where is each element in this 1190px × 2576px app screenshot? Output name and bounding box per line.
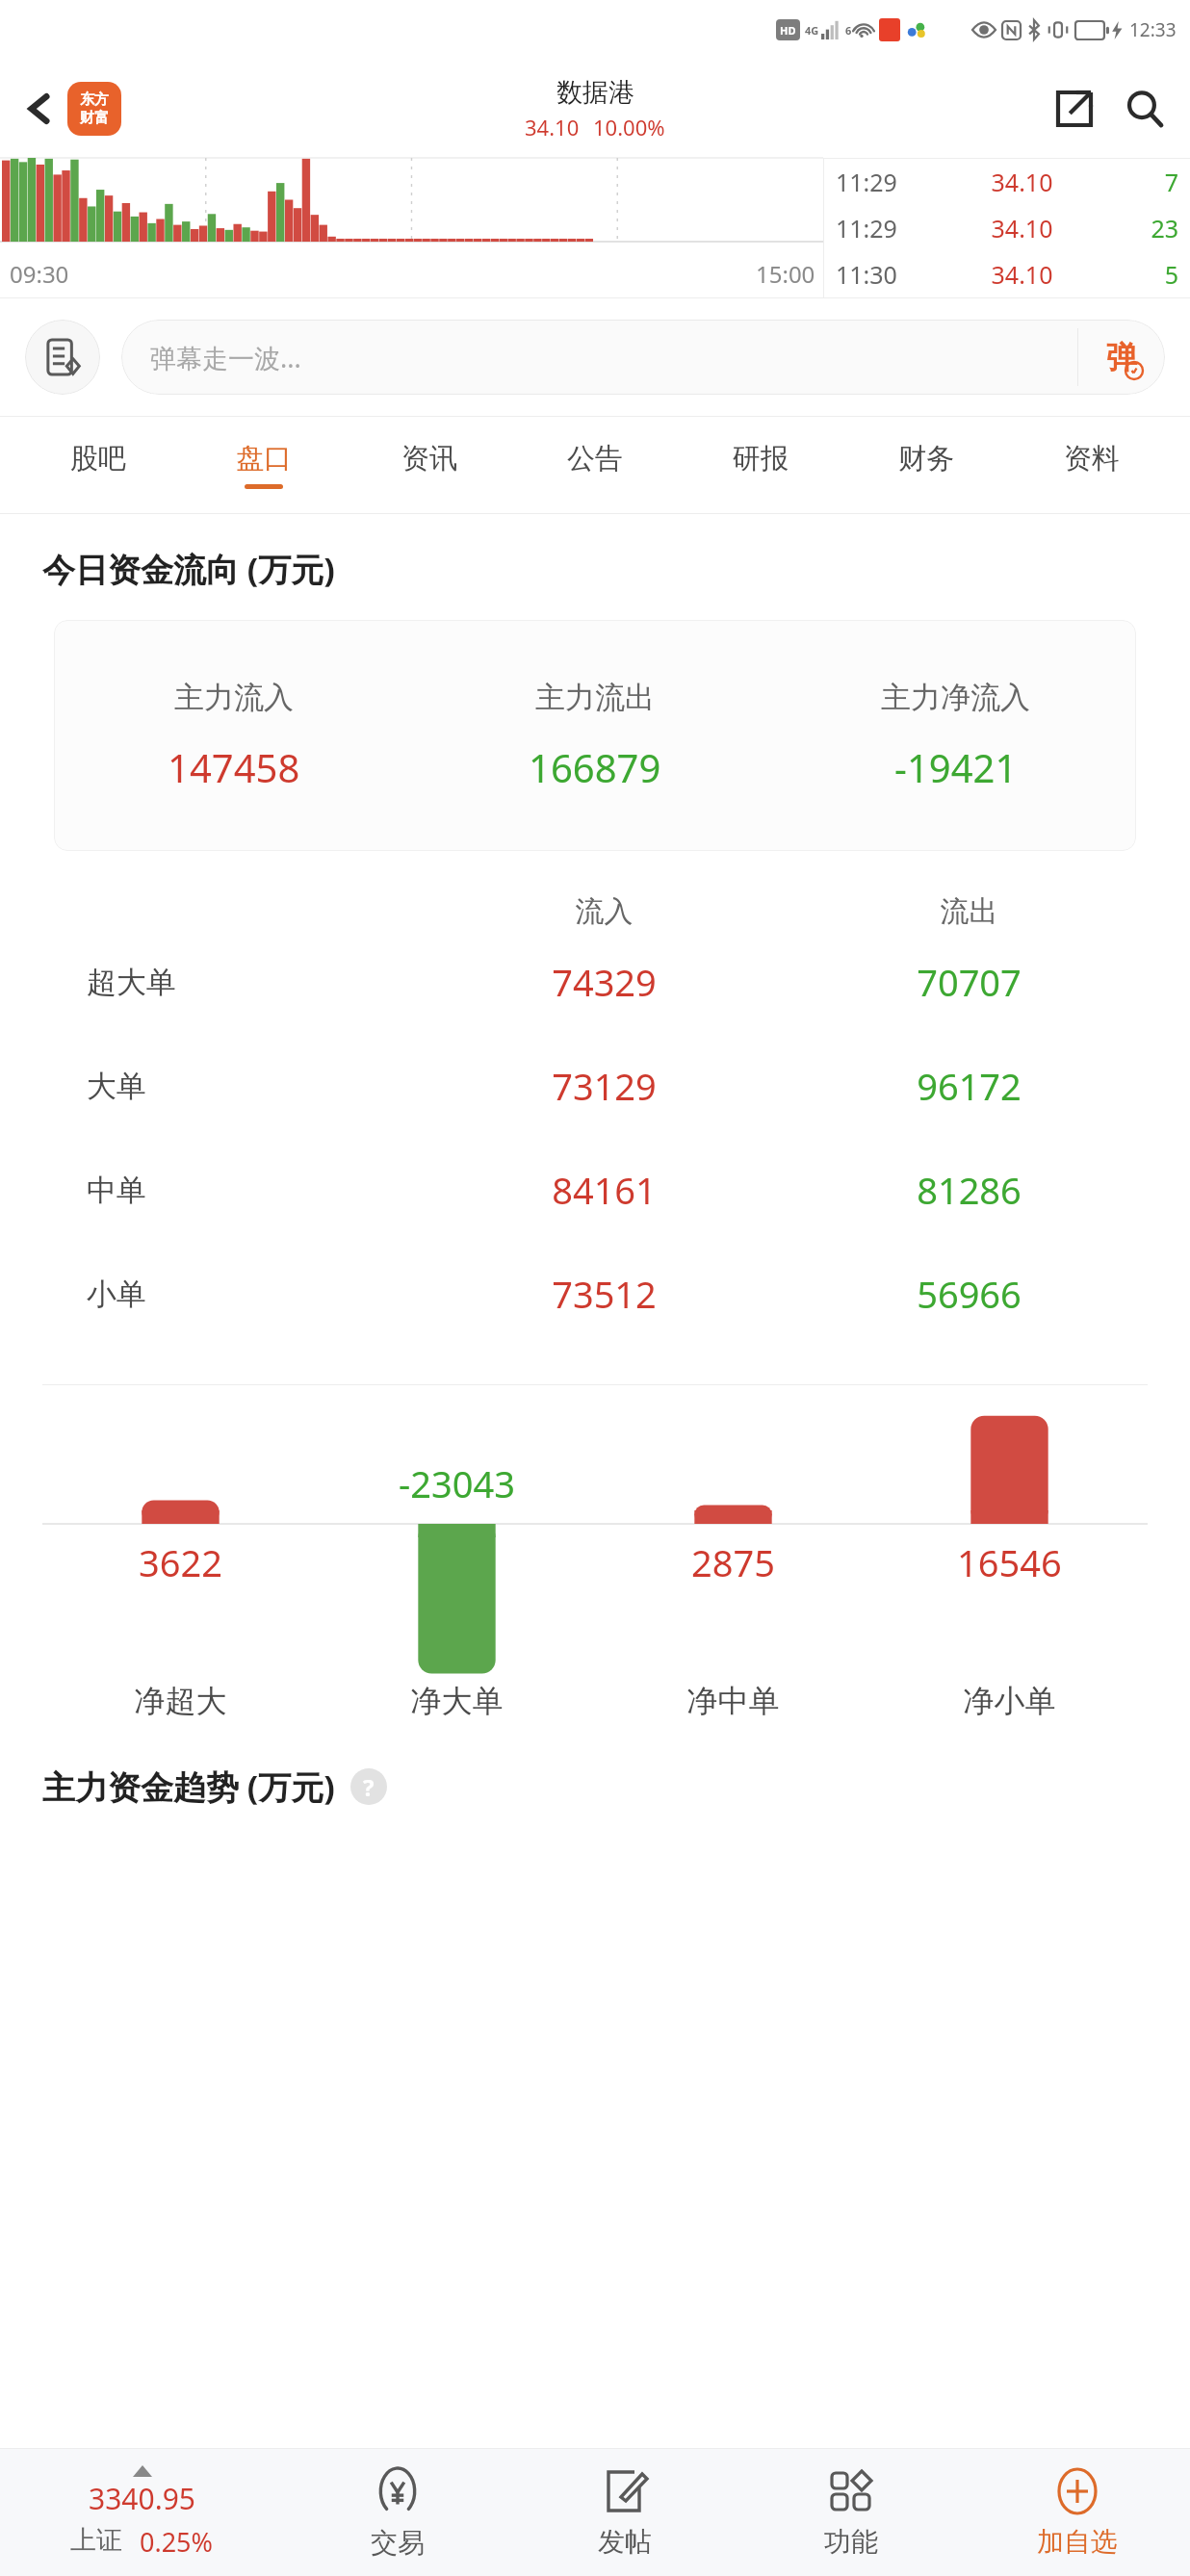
staticText: 34.10 [954,166,1090,198]
staticText: 超大单 [87,964,422,1001]
staticText: HD [780,23,796,38]
button[interactable]: 资料 [1009,417,1175,513]
button[interactable]: 股吧 [15,417,181,513]
button[interactable]: 东方财富 [67,82,121,136]
staticText: 2875 [691,1537,775,1587]
button[interactable]: Search [1117,81,1173,137]
staticText: 166879 [529,741,661,793]
button[interactable]: Help [350,1768,387,1805]
staticText: 股吧 [70,441,126,477]
staticText: 盘口 [236,441,292,477]
staticText: 功能 [824,2525,878,2559]
staticText: 加自选 [1037,2525,1118,2559]
staticText: 6 [845,23,852,38]
staticText: 15:00 [756,258,815,290]
button[interactable]: 盘口 [181,417,347,513]
staticText: 净超大 [42,1682,319,1720]
staticText: 4G [805,23,819,38]
staticText: 3340.95 [89,2479,195,2518]
staticText: 弹幕走一波... [150,340,1077,375]
button[interactable]: Share [1048,82,1101,136]
staticText: -23043 [399,1458,515,1508]
staticText: 0.25% [140,2524,214,2560]
staticText: 主力流入 [174,679,294,716]
staticText: 今日资金流向 (万元) [42,547,335,591]
staticText: 34.10 [525,113,580,142]
staticText: 资料 [1064,441,1120,477]
staticText: 资讯 [401,441,457,477]
button[interactable]: 主力流入 [54,620,1136,851]
button[interactable]: 中单 [39,1138,1151,1242]
staticText: ? [363,1771,375,1803]
staticText: 23 [1090,212,1178,245]
button[interactable]: 弹幕走一波... [121,320,1165,395]
staticText: 净大单 [319,1682,595,1720]
staticText: 发帖 [598,2525,652,2559]
staticText: 09:30 [10,258,69,290]
staticText: 34.10 [954,258,1090,291]
button[interactable]: 交易 [284,2449,511,2576]
staticText: 16546 [957,1537,1062,1587]
staticText: 上证 [70,2524,122,2557]
staticText: 交易 [371,2526,425,2560]
button[interactable]: 功能 [737,2449,964,2576]
staticText: 73512 [422,1269,787,1319]
button[interactable]: 小单 [39,1242,1151,1346]
button[interactable]: 3340.95 [0,2449,284,2576]
staticText: 流入 [422,893,787,930]
staticText: 11:30 [836,258,954,291]
staticText: 84161 [422,1165,787,1215]
button[interactable]: 超大单 [39,930,1151,1034]
staticText: 弹 [1106,338,1137,376]
staticText: 34.10 [954,212,1090,245]
staticText: 56966 [787,1269,1151,1319]
staticText: 74329 [422,957,787,1007]
staticText: 小单 [87,1275,422,1313]
staticText: 73129 [422,1061,787,1111]
button[interactable]: 财务 [843,417,1009,513]
staticText: 财富 [80,109,109,127]
staticText: 财务 [898,441,954,477]
staticText: 主力资金趋势 (万元) [42,1765,335,1809]
staticText: 96172 [787,1061,1151,1111]
staticText: 3622 [139,1537,222,1587]
staticText: 5 [1090,258,1178,291]
button[interactable]: 研报 [678,417,843,513]
button[interactable]: 大单 [39,1034,1151,1138]
staticText: 研报 [733,441,789,477]
staticText: 主力净流入 [881,679,1030,716]
staticText: 11:29 [836,166,954,198]
staticText: 数据港 [556,76,634,109]
staticText: -19421 [894,741,1018,793]
staticText: 147458 [168,741,300,793]
staticText: 主力流出 [535,679,655,716]
staticText: 大单 [87,1068,422,1105]
staticText: 公告 [567,441,623,477]
staticText: 净中单 [595,1682,871,1720]
staticText: 净小单 [871,1682,1148,1720]
staticText: 流出 [787,893,1151,930]
staticText: 81286 [787,1165,1151,1215]
button[interactable]: 公告 [512,417,678,513]
staticText: 10.00% [593,113,665,142]
staticText: 东方 [80,90,109,109]
staticText: 11:29 [836,212,954,245]
button[interactable]: 发帖 [511,2449,737,2576]
button[interactable]: 加自选 [964,2449,1190,2576]
staticText: 中单 [87,1172,422,1209]
button[interactable]: 资讯 [347,417,512,513]
staticText: 12:33 [1129,17,1177,42]
button[interactable]: Back [12,81,67,137]
staticText: 70707 [787,957,1151,1007]
staticText: 7 [1090,166,1178,198]
button[interactable]: Notes [25,320,100,395]
